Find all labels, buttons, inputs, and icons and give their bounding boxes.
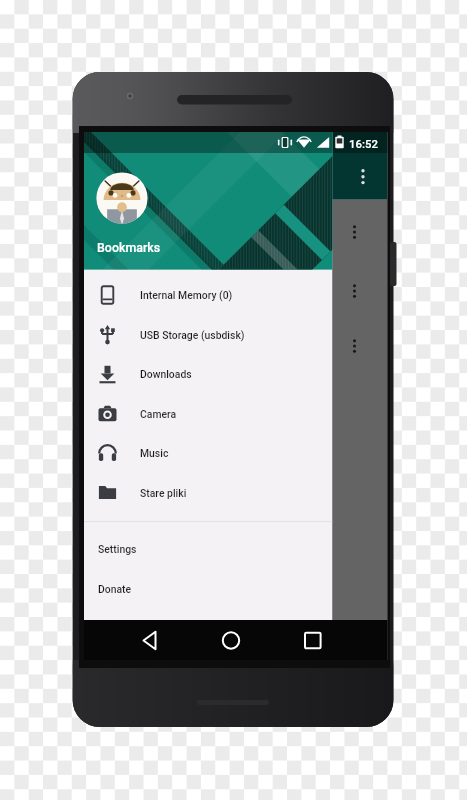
staticText: Music xyxy=(140,447,169,459)
staticText: Donate xyxy=(98,583,132,595)
button[interactable]: Donate xyxy=(84,569,333,608)
button[interactable]: Settings xyxy=(84,529,333,568)
staticText: Downloads xyxy=(140,368,192,380)
button[interactable]: Camera xyxy=(84,394,333,433)
button[interactable]: USB Storage (usbdisk) xyxy=(84,315,333,354)
button[interactable]: Stare pliki xyxy=(84,473,333,512)
staticText: Settings xyxy=(98,543,137,555)
staticText: Stare pliki xyxy=(140,487,187,499)
staticText: USB Storage (usbdisk) xyxy=(140,329,245,341)
button[interactable]: Downloads xyxy=(84,354,333,393)
staticText: Camera xyxy=(140,408,177,420)
staticText: 16:52 xyxy=(349,137,378,150)
button[interactable]: Music xyxy=(84,433,333,472)
button[interactable]: Internal Memory (0) xyxy=(84,275,333,314)
staticText: Bookmarks xyxy=(97,240,161,255)
staticText: Internal Memory (0) xyxy=(140,289,233,301)
